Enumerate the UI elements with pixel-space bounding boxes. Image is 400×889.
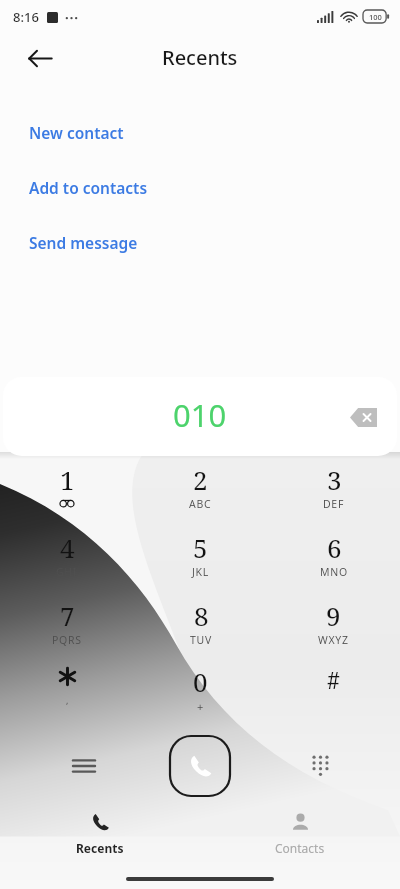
staticText: # <box>327 664 340 695</box>
button[interactable]: 5 <box>134 530 267 592</box>
staticText: 3 <box>327 462 342 497</box>
staticText: Recents <box>76 840 124 856</box>
button[interactable]: Send message <box>0 215 400 270</box>
button[interactable]: Contacts <box>200 805 400 863</box>
staticText: WXYZ <box>318 633 349 647</box>
button[interactable]: 0 <box>134 664 267 726</box>
button[interactable]: 8 <box>134 598 267 660</box>
button[interactable]: # <box>267 664 400 726</box>
button[interactable]: New contact <box>0 105 400 160</box>
button[interactable]: Call <box>167 733 233 799</box>
button[interactable]: 1 <box>0 462 134 524</box>
button[interactable]: 3 <box>267 462 400 524</box>
staticText: Send message <box>29 232 138 253</box>
staticText: 2 <box>193 462 208 497</box>
staticText: DEF <box>323 497 345 511</box>
staticText: TUV <box>190 633 212 647</box>
staticText: 8:16 <box>13 8 39 26</box>
staticText: 8 <box>194 598 209 633</box>
button[interactable]: 6 <box>267 530 400 592</box>
button[interactable]: 2 <box>134 462 267 524</box>
button[interactable]: 4 <box>0 530 134 592</box>
staticText: 010 <box>173 394 227 436</box>
staticText: 9 <box>326 598 341 633</box>
staticText: 6 <box>327 530 342 565</box>
staticText: 5 <box>193 530 208 565</box>
button[interactable]: Back <box>17 35 63 81</box>
button[interactable]: 9 <box>267 598 400 660</box>
staticText: ABC <box>189 497 212 511</box>
staticText: 100 <box>369 12 382 22</box>
button[interactable]: More options <box>58 740 110 792</box>
button[interactable]: Backspace <box>340 394 386 440</box>
staticText: 1 <box>60 462 75 497</box>
button[interactable]: Dialpad <box>294 740 346 792</box>
staticText: 4 <box>60 530 75 565</box>
staticText: Add to contacts <box>29 177 148 198</box>
staticText: PQRS <box>52 633 82 647</box>
button[interactable]: , <box>0 664 134 726</box>
staticText: MNO <box>320 565 348 579</box>
button[interactable]: Recents <box>0 805 200 863</box>
staticText: , <box>66 694 69 706</box>
staticText: 0 <box>193 664 208 699</box>
staticText: Recents <box>162 44 238 71</box>
button[interactable]: Add to contacts <box>0 160 400 215</box>
staticText: New contact <box>29 122 124 143</box>
staticText: JKL <box>192 565 209 579</box>
staticText: + <box>197 699 204 714</box>
staticText: 7 <box>60 598 75 633</box>
button[interactable]: 7 <box>0 598 134 660</box>
staticText: Contacts <box>275 840 325 856</box>
